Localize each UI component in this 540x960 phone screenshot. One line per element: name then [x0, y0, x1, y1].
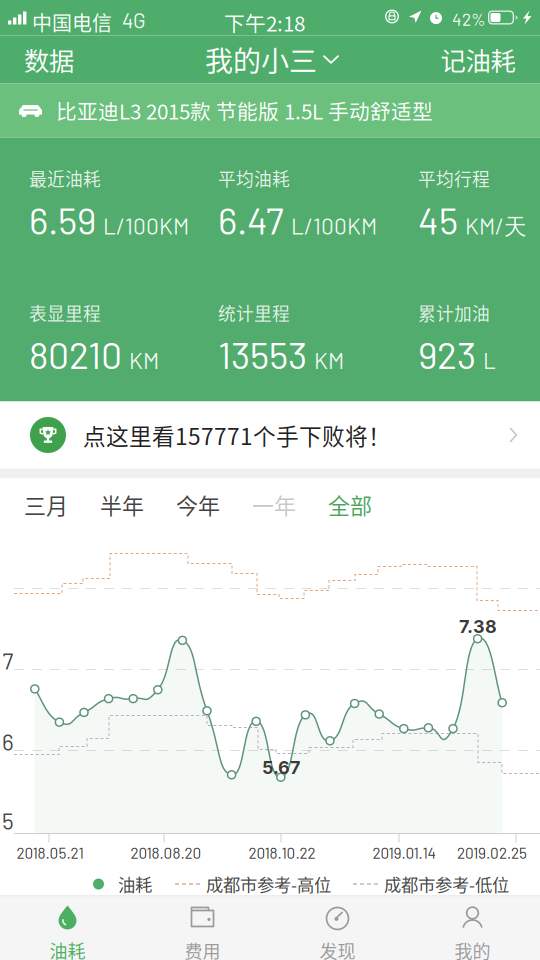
staticText: L/100KM [103, 212, 189, 239]
button[interactable]: 记油耗 [433, 35, 523, 83]
staticText: 一年 [252, 489, 296, 520]
staticText: 45 [418, 197, 458, 242]
staticText: 我的 [454, 937, 490, 960]
button[interactable]: 我的 [405, 896, 540, 960]
button[interactable]: 三月 [8, 478, 84, 530]
staticText: 记油耗 [440, 41, 515, 78]
staticText: 2018.10.22 [248, 843, 315, 862]
staticText: 今年 [176, 489, 220, 520]
staticText: 5 [2, 807, 14, 834]
staticText: 成都市参考-低位 [384, 871, 509, 897]
button[interactable]: 一年 [236, 478, 312, 530]
staticText: 6 [2, 728, 14, 755]
staticText: 三月 [24, 489, 68, 520]
button[interactable]: 发现 [270, 896, 405, 960]
staticText: 13553 [218, 332, 307, 376]
staticText: 我的小三 [205, 39, 317, 80]
staticText: 6.59 [29, 197, 96, 242]
staticText: KM [314, 346, 344, 373]
staticText: 点这里看157771个手下败将！ [83, 419, 391, 451]
button[interactable]: 全部 [312, 478, 388, 530]
staticText: 2019.02.25 [457, 843, 527, 862]
staticText: 表显里程 [29, 300, 101, 326]
staticText: 平均行程 [418, 165, 490, 191]
staticText: 80210 [29, 332, 122, 376]
staticText: L/100KM [291, 212, 377, 239]
staticText: 中国电信 [32, 7, 112, 36]
staticText: 7.38 [459, 616, 497, 637]
button[interactable]: 点这里看157771个手下败将！ [0, 401, 540, 468]
button[interactable]: 我的小三 [201, 35, 343, 83]
staticText: 半年 [100, 489, 144, 520]
button[interactable]: 今年 [160, 478, 236, 530]
button[interactable]: 费用 [135, 896, 270, 960]
staticText: 2018.05.21 [16, 843, 83, 862]
staticText: 5.67 [262, 757, 300, 778]
staticText: 6.47 [218, 197, 284, 242]
staticText: 42% [452, 8, 486, 29]
staticText: 平均油耗 [218, 165, 290, 191]
staticText: KM/天 [465, 212, 527, 241]
button[interactable]: 比亚迪L3 2015款 节能版 1.5L 手动舒适型 [0, 83, 540, 137]
staticText: 4G [122, 7, 146, 32]
staticText: 比亚迪L3 2015款 节能版 1.5L 手动舒适型 [56, 95, 433, 125]
staticText: 923 [418, 332, 476, 376]
staticText: 7 [2, 647, 13, 674]
staticText: 下午2:18 [224, 7, 305, 37]
button[interactable]: 油耗 [0, 896, 135, 960]
staticText: 发现 [319, 937, 355, 960]
staticText: 油耗 [49, 937, 85, 960]
button[interactable]: 数据 [13, 35, 85, 83]
staticText: 最近油耗 [29, 165, 101, 191]
staticText: L [483, 346, 496, 373]
staticText: 2018.08.20 [130, 843, 201, 862]
staticText: 统计里程 [218, 300, 290, 326]
staticText: 成都市参考-高位 [206, 871, 331, 897]
staticText: 累计加油 [418, 300, 490, 326]
staticText: 油耗 [118, 871, 152, 897]
button[interactable]: 半年 [84, 478, 160, 530]
staticText: 费用 [184, 937, 220, 960]
staticText: 2019.01.14 [372, 843, 435, 862]
staticText: 数据 [24, 41, 74, 78]
staticText: KM [129, 346, 159, 373]
staticText: 全部 [328, 489, 372, 520]
